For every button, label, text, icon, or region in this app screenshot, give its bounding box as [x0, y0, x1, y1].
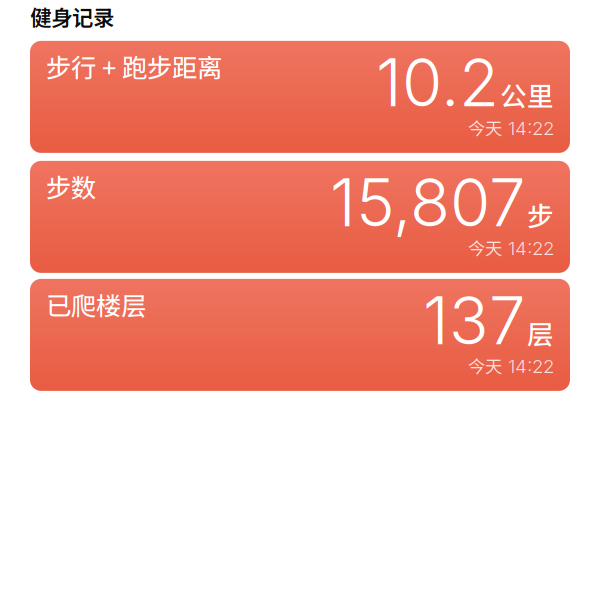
staticText: 今天: [468, 235, 502, 260]
staticText: 步数: [46, 168, 96, 205]
staticText: 14:22: [508, 237, 554, 259]
staticText: 今天: [468, 115, 502, 140]
staticText: 10.2: [376, 43, 499, 122]
button[interactable]: 步行 + 跑步距离: [30, 41, 570, 153]
staticText: 层: [527, 313, 554, 352]
staticText: 步: [527, 195, 554, 234]
staticText: 今天: [468, 353, 502, 378]
staticText: 步行 + 跑步距离: [46, 48, 222, 85]
staticText: 14:22: [508, 355, 554, 377]
staticText: 公里: [500, 75, 554, 114]
button[interactable]: 已爬楼层: [30, 279, 570, 391]
staticText: 137: [423, 281, 526, 360]
staticText: 15,807: [330, 163, 526, 242]
button[interactable]: 步数: [30, 161, 570, 273]
staticText: 健身记录: [30, 1, 114, 32]
staticText: 已爬楼层: [46, 286, 146, 323]
staticText: 14:22: [508, 117, 554, 139]
